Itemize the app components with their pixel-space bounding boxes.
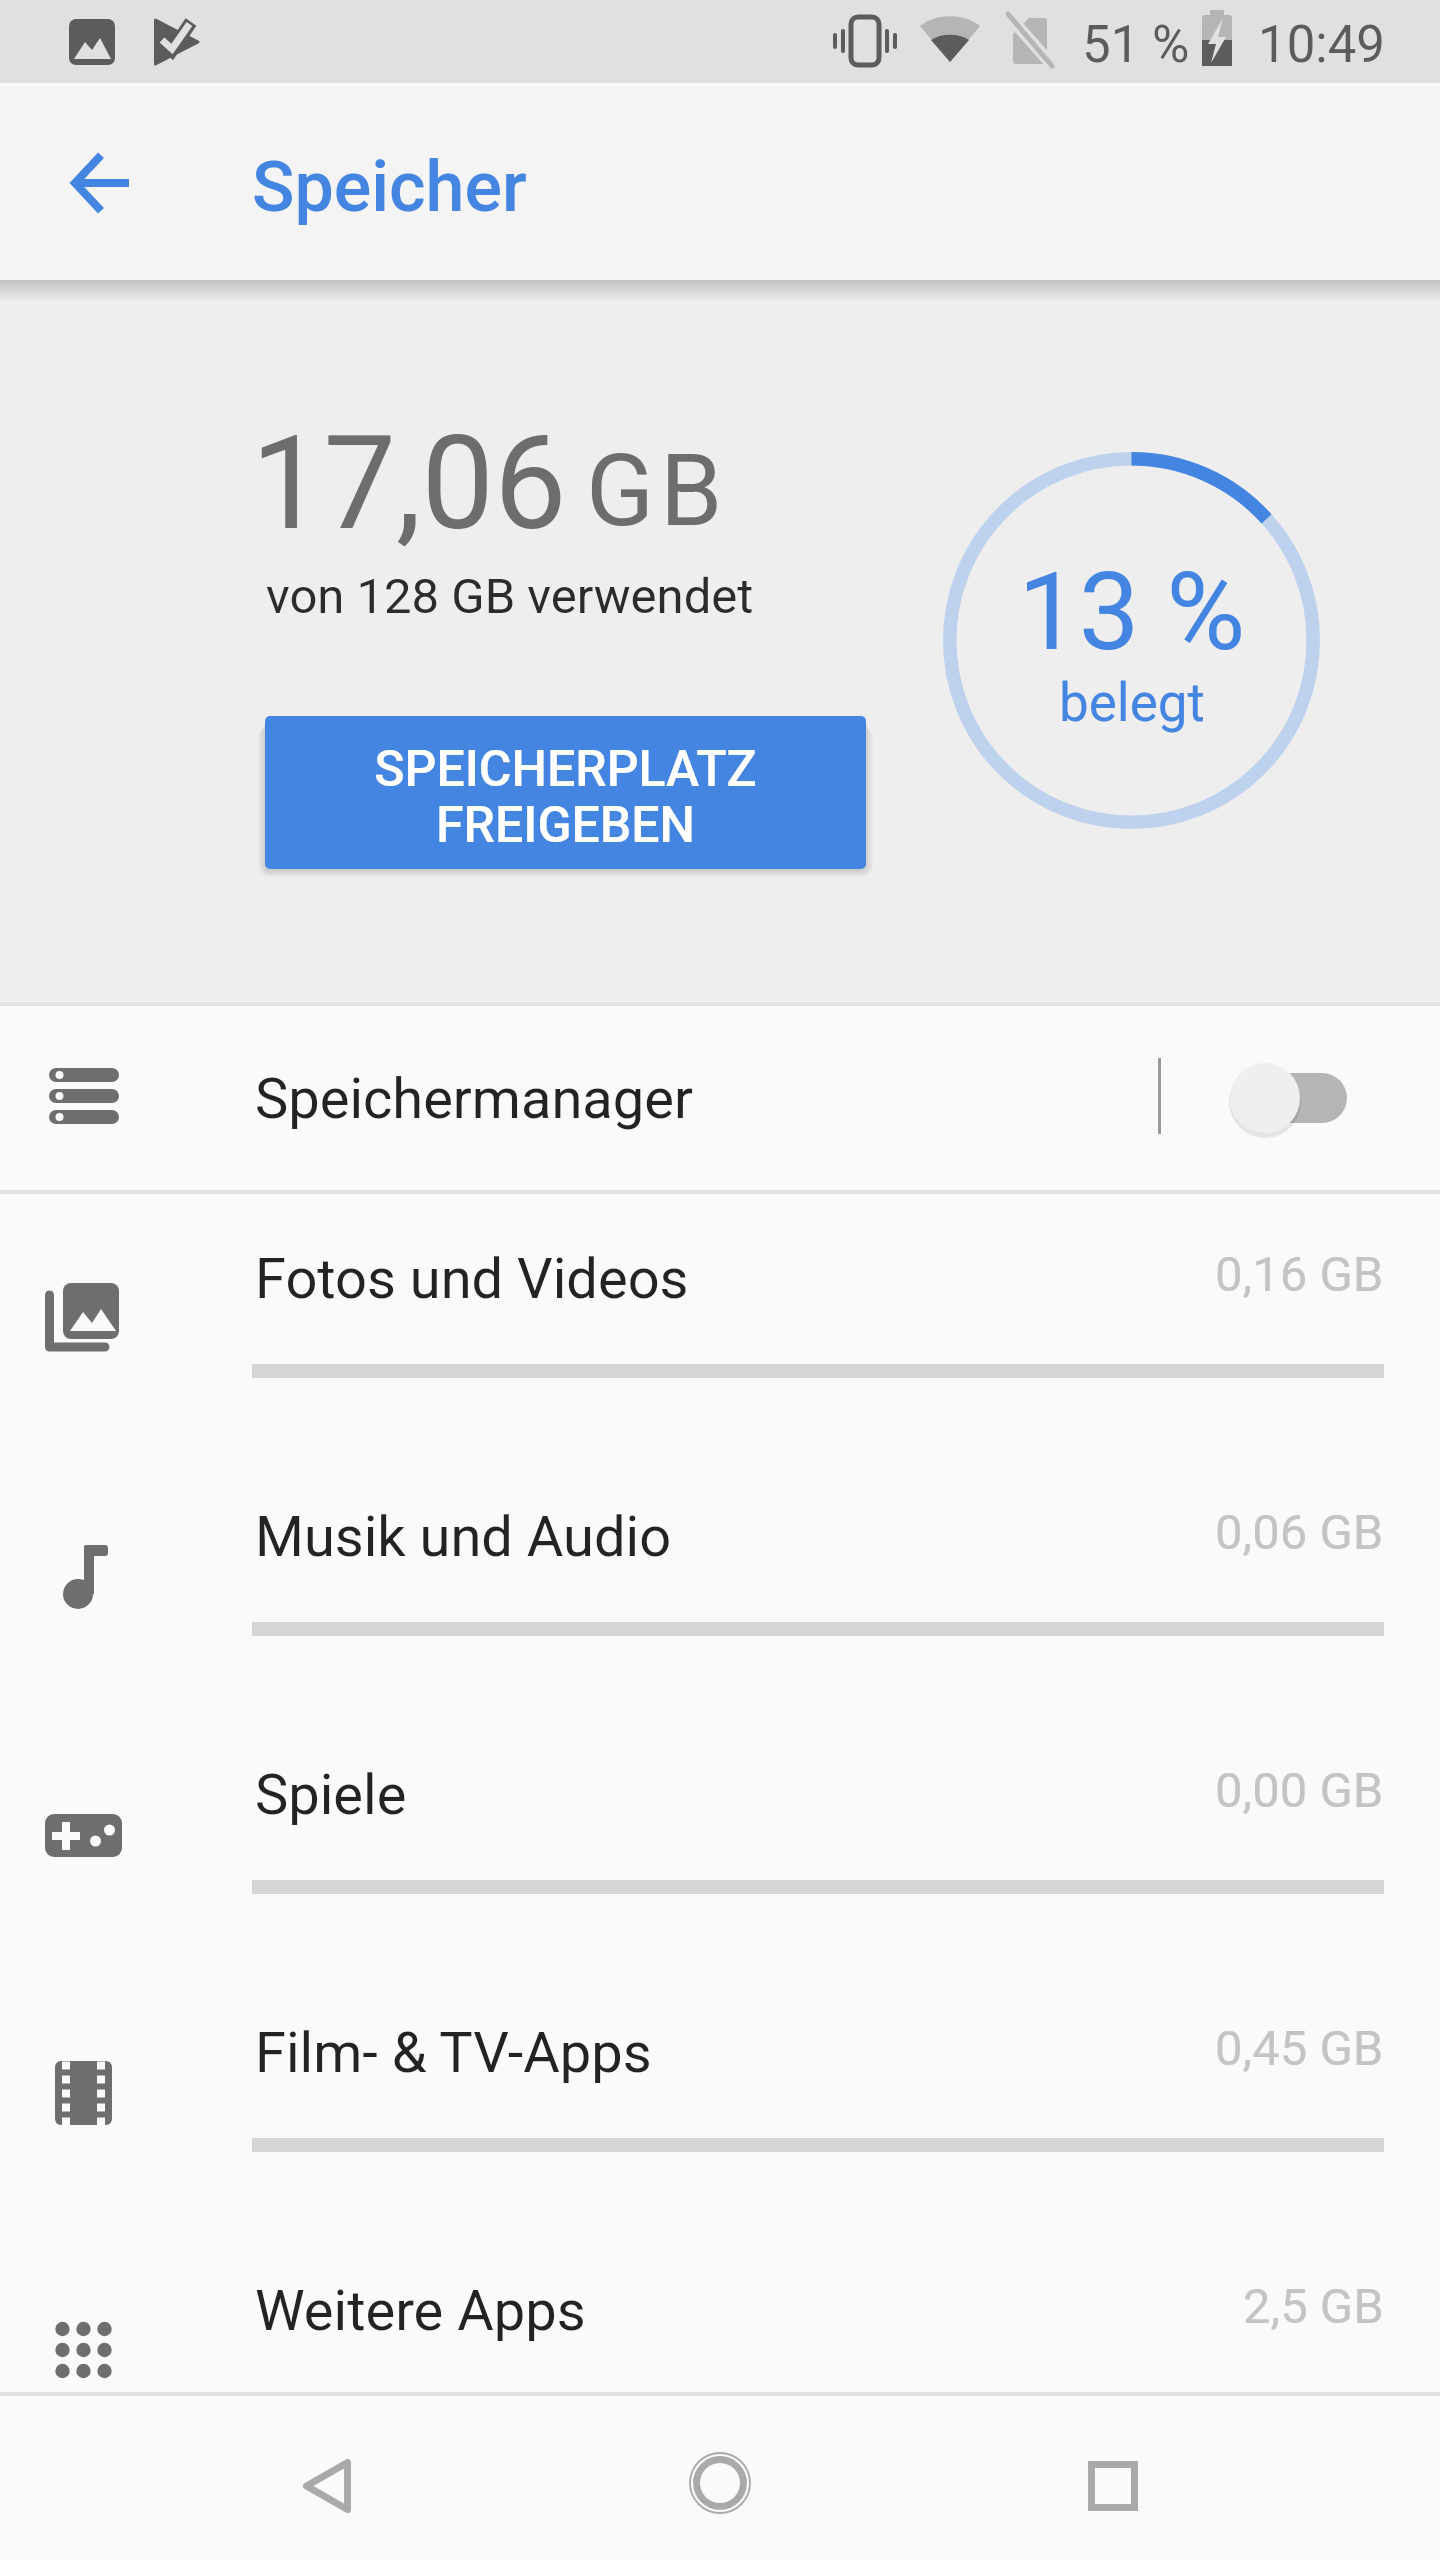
staticText: SPEICHERPLATZ FREIGEBEN bbox=[374, 740, 757, 854]
button[interactable]: Speichermanager bbox=[0, 1006, 1440, 1190]
staticText: 2,5 GB bbox=[1243, 2278, 1384, 2335]
staticText: 0,00 GB bbox=[1215, 1762, 1384, 1819]
staticText: 0,16 GB bbox=[1215, 1246, 1384, 1303]
staticText: Film- & TV-Apps bbox=[255, 2020, 652, 2086]
staticText: 0,06 GB bbox=[1215, 1504, 1384, 1561]
button[interactable]: Back bbox=[257, 2416, 397, 2556]
staticText: Weitere Apps bbox=[255, 2278, 586, 2344]
staticText: belegt bbox=[1059, 672, 1205, 734]
staticText: 51 % bbox=[1082, 15, 1190, 75]
button[interactable]: Back bbox=[46, 128, 156, 238]
button[interactable]: Home bbox=[650, 2413, 790, 2553]
button[interactable]: Film- & TV-Apps bbox=[0, 1968, 1440, 2226]
button[interactable]: Musik und Audio bbox=[0, 1452, 1440, 1710]
button[interactable]: Fotos und Videos bbox=[0, 1194, 1440, 1452]
staticText: GB bbox=[586, 432, 729, 549]
button[interactable]: SPEICHERPLATZ FREIGEBEN bbox=[265, 716, 866, 869]
staticText: 10:49 bbox=[1258, 15, 1386, 75]
staticText: Spiele bbox=[255, 1762, 407, 1828]
button[interactable]: Weitere Apps bbox=[0, 2226, 1440, 2392]
staticText: Speichermanager bbox=[255, 1066, 693, 1132]
button[interactable]: Spiele bbox=[0, 1710, 1440, 1968]
button[interactable]: Recent apps bbox=[1043, 2416, 1183, 2556]
staticText: 0,45 GB bbox=[1215, 2020, 1384, 2077]
staticText: Fotos und Videos bbox=[255, 1246, 689, 1312]
staticText: Musik und Audio bbox=[255, 1504, 672, 1570]
staticText: 17,06 bbox=[251, 408, 567, 559]
staticText: 13 % bbox=[1018, 549, 1246, 676]
button[interactable]: Speichermanager toggle bbox=[1200, 1048, 1380, 1148]
staticText: von 128 GB verwendet bbox=[266, 568, 754, 625]
staticText: Speicher bbox=[252, 146, 527, 228]
